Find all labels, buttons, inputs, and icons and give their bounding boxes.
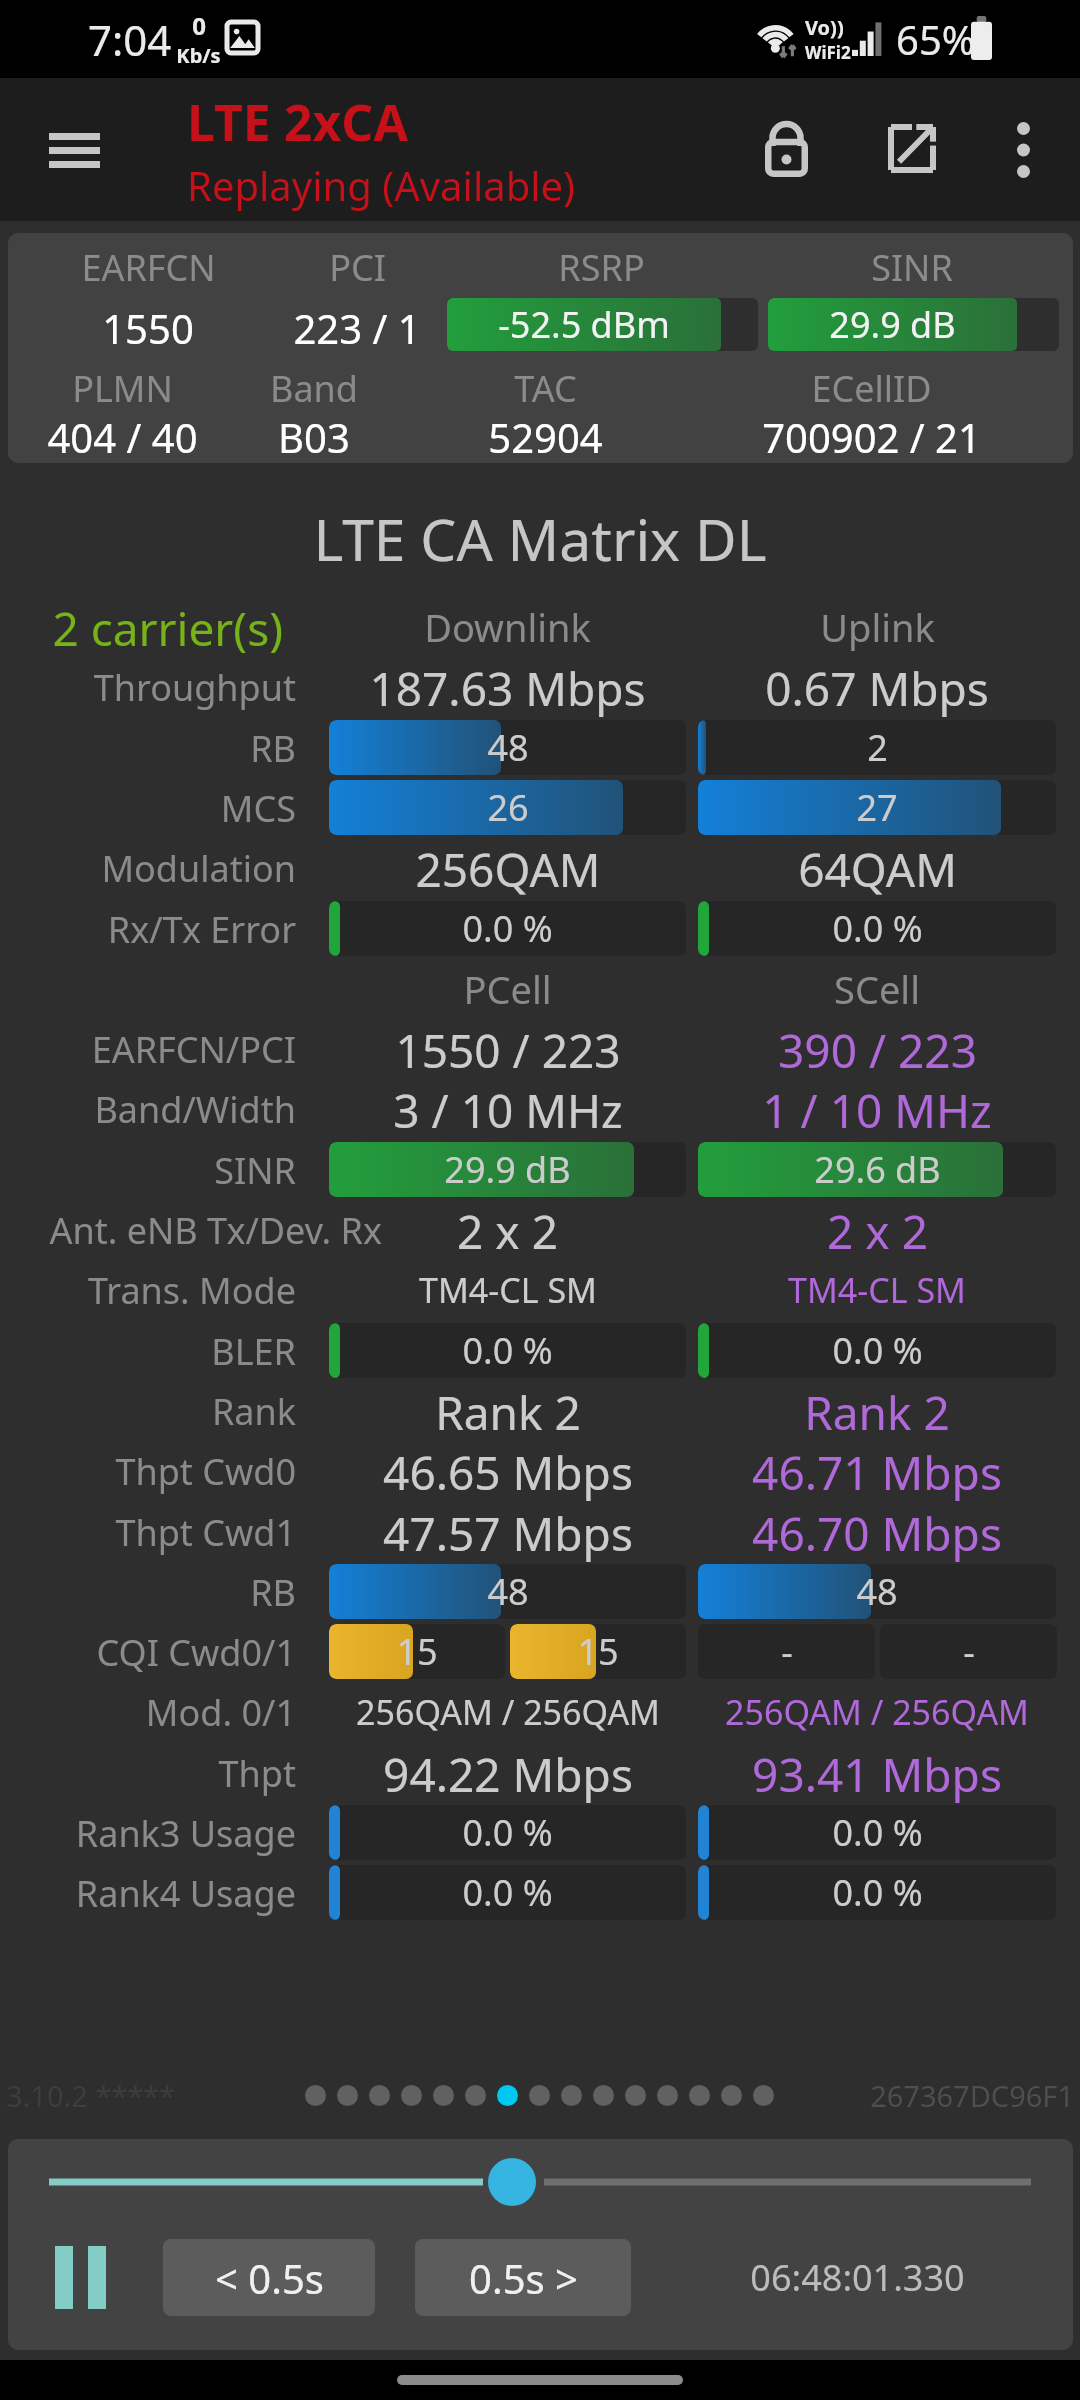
staticText: Rank 2 xyxy=(435,1381,581,1441)
staticText: TM4-CL SM xyxy=(788,1267,966,1313)
button[interactable]: Pause xyxy=(55,2246,114,2309)
staticText: EARFCN xyxy=(81,243,216,292)
staticText: 256QAM / 256QAM xyxy=(725,1689,1029,1735)
button[interactable]: Open in new window xyxy=(866,104,958,196)
staticText: 223 / 1 xyxy=(293,301,421,355)
staticText: 2 carrier(s) xyxy=(52,597,283,657)
staticText: 52904 xyxy=(488,410,603,463)
staticText: LTE CA Matrix DL xyxy=(313,500,767,572)
staticText: Rank xyxy=(211,1387,296,1436)
staticText: 1550 / 223 xyxy=(395,1019,621,1079)
staticText: < 0.5s xyxy=(215,2251,324,2305)
staticText: MCS xyxy=(220,784,296,833)
staticText: EARFCN/PCI xyxy=(91,1025,296,1074)
staticText: 29.9 dB xyxy=(829,300,956,349)
staticText: 48 xyxy=(487,1567,529,1616)
staticText: 0.0 % xyxy=(462,1808,553,1857)
staticText: 256QAM / 256QAM xyxy=(356,1689,660,1735)
staticText: 267367DC96F1 xyxy=(870,2076,1074,2115)
staticText: 404 / 40 xyxy=(47,410,198,463)
staticText: 64QAM xyxy=(798,838,957,898)
staticText: 46.65 Mbps xyxy=(383,1441,633,1501)
staticText: Vo)) xyxy=(805,14,844,41)
button[interactable]: More options xyxy=(977,104,1069,196)
staticText: Downlink xyxy=(424,601,591,653)
staticText: 187.63 Mbps xyxy=(369,657,646,717)
staticText: Rx/Tx Error xyxy=(107,905,296,954)
staticText: 0.0 % xyxy=(462,1868,553,1917)
staticText: 29.9 dB xyxy=(444,1145,571,1194)
staticText: Mod. 0/1 xyxy=(145,1688,296,1737)
staticText: Rank 2 xyxy=(804,1381,950,1441)
staticText: 27 xyxy=(856,783,898,832)
staticText: Trans. Mode xyxy=(88,1266,296,1315)
staticText: - xyxy=(963,1627,975,1676)
button[interactable]: Lock xyxy=(740,104,832,196)
staticText: Band/Width xyxy=(94,1085,296,1134)
staticText: 2 x 2 xyxy=(457,1200,558,1260)
staticText: 93.41 Mbps xyxy=(752,1743,1002,1803)
staticText: 65% xyxy=(896,12,975,66)
staticText: 0 xyxy=(192,9,206,42)
staticText: TAC xyxy=(514,364,577,413)
staticText: LTE 2xCA xyxy=(187,88,408,156)
staticText: 7:04 xyxy=(88,11,172,68)
staticText: 390 / 223 xyxy=(778,1019,977,1079)
staticText: 2 xyxy=(867,723,888,772)
staticText: SCell xyxy=(834,963,920,1015)
staticText: Thpt Cwd1 xyxy=(115,1508,296,1557)
staticText: - xyxy=(781,1627,793,1676)
staticText: Kb/s xyxy=(176,42,221,69)
staticText: RB xyxy=(250,724,296,773)
staticText: 3 / 10 MHz xyxy=(393,1079,623,1139)
button[interactable]: Menu xyxy=(28,104,120,196)
staticText: 46.70 Mbps xyxy=(752,1502,1002,1562)
staticText: B03 xyxy=(278,410,350,463)
staticText: 0.0 % xyxy=(462,1326,553,1375)
button[interactable]: < 0.5s xyxy=(163,2239,375,2316)
staticText: 26 xyxy=(487,783,529,832)
staticText: 15 xyxy=(396,1627,438,1676)
staticText: SINR xyxy=(871,243,953,292)
staticText: -52.5 dBm xyxy=(498,300,670,349)
staticText: Modulation xyxy=(101,844,296,893)
staticText: RSRP xyxy=(558,243,645,292)
staticText: Thpt xyxy=(218,1749,296,1798)
staticText: ECellID xyxy=(811,364,932,413)
staticText: PLMN xyxy=(72,364,173,413)
staticText: 2 x 2 xyxy=(827,1200,928,1260)
staticText: WiFi2 xyxy=(805,41,851,64)
staticText: 48 xyxy=(487,723,529,772)
staticText: PCell xyxy=(463,963,552,1015)
staticText: Ant. eNB Tx/Dev. Rx xyxy=(49,1206,382,1255)
staticText: 1 / 10 MHz xyxy=(762,1079,992,1139)
staticText: PCI xyxy=(329,243,386,292)
staticText: 0.0 % xyxy=(832,1808,923,1857)
staticText: BLER xyxy=(211,1327,296,1376)
staticText: RB xyxy=(250,1568,296,1617)
staticText: 47.57 Mbps xyxy=(383,1502,633,1562)
staticText: Replaying (Available) xyxy=(187,158,576,212)
staticText: TM4-CL SM xyxy=(419,1267,597,1313)
staticText: 29.6 dB xyxy=(814,1145,941,1194)
staticText: 1550 xyxy=(102,301,194,355)
staticText: 3.10.2 ***** xyxy=(6,2076,176,2115)
button[interactable]: 0.5s > xyxy=(415,2239,631,2316)
staticText: 06:48:01.330 xyxy=(750,2253,965,2302)
staticText: 0.0 % xyxy=(832,1868,923,1917)
staticText: 0.0 % xyxy=(462,904,553,953)
staticText: 0.5s > xyxy=(469,2251,578,2305)
staticText: 0.0 % xyxy=(832,904,923,953)
staticText: Throughput xyxy=(93,663,296,712)
staticText: 46.71 Mbps xyxy=(752,1441,1002,1501)
staticText: 15 xyxy=(577,1627,619,1676)
staticText: 94.22 Mbps xyxy=(383,1743,633,1803)
staticText: 256QAM xyxy=(415,838,601,898)
staticText: 48 xyxy=(856,1567,898,1616)
staticText: 0.0 % xyxy=(832,1326,923,1375)
staticText: SINR xyxy=(214,1146,296,1195)
staticText: Thpt Cwd0 xyxy=(115,1447,296,1496)
staticText: Band xyxy=(270,364,358,413)
staticText: Rank4 Usage xyxy=(75,1869,296,1918)
staticText: CQI Cwd0/1 xyxy=(96,1628,296,1677)
